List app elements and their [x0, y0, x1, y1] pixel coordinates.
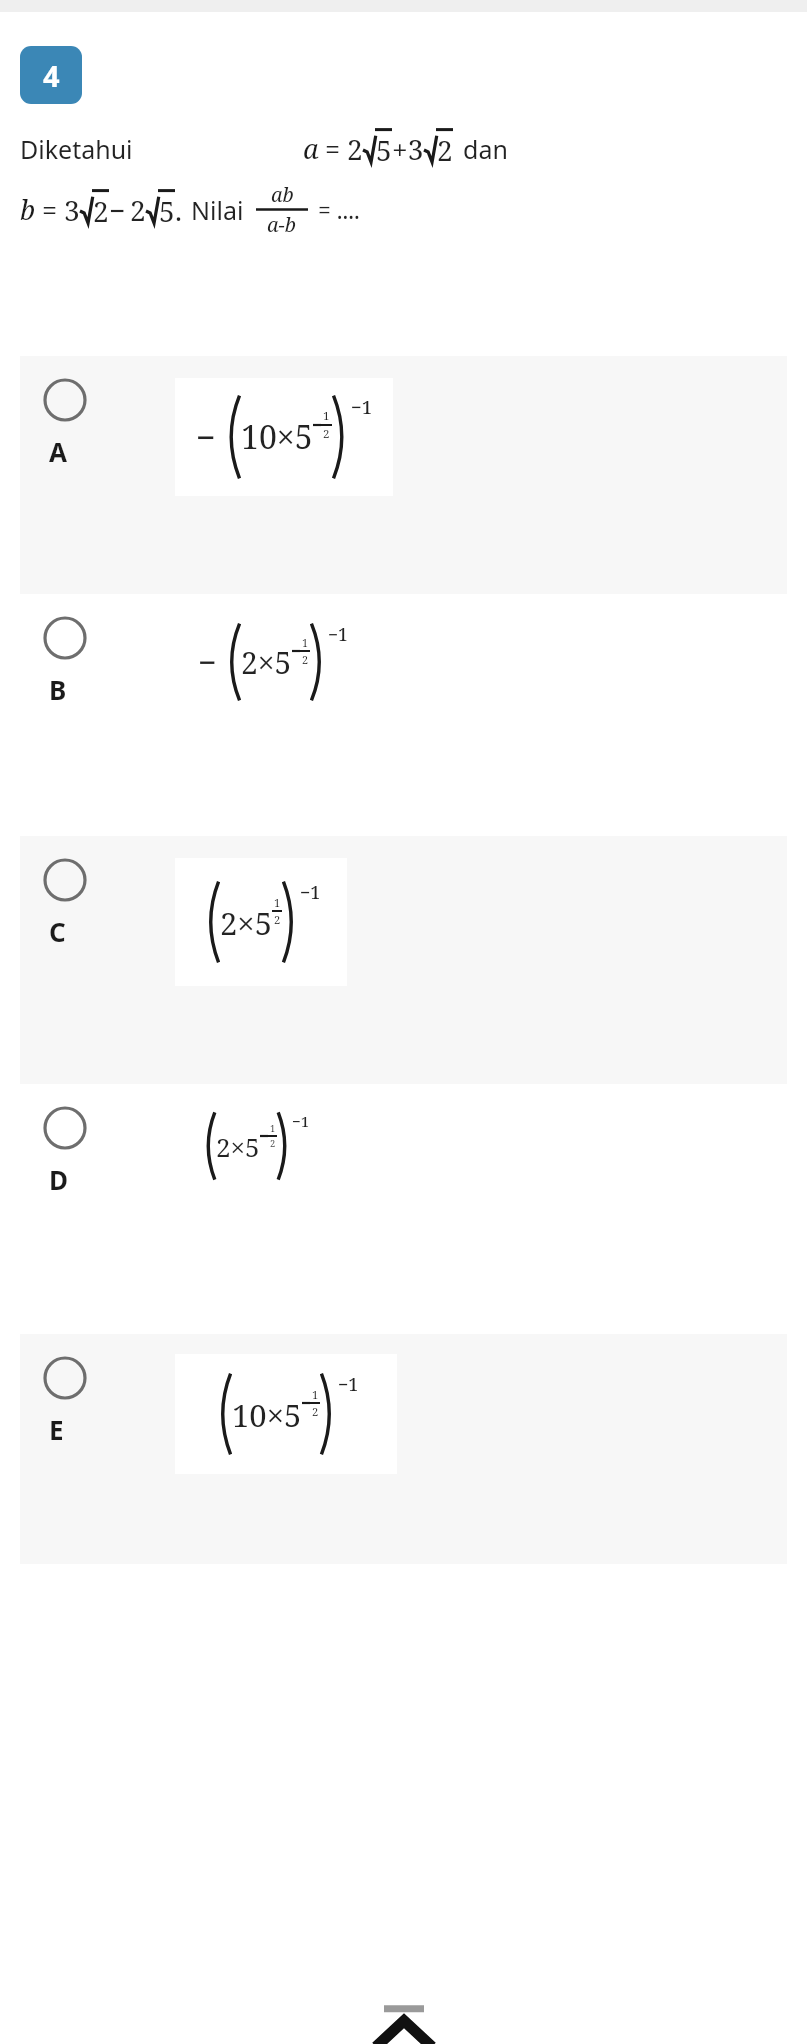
button[interactable]: D	[20, 1084, 787, 1334]
staticText: 10×5	[232, 1394, 302, 1436]
staticText: 2×5	[216, 1129, 260, 1164]
staticText: 1	[302, 635, 309, 650]
button[interactable]: E	[20, 1334, 787, 1564]
staticText: 1	[312, 1387, 319, 1402]
staticText: −	[109, 191, 126, 229]
staticText: +3	[392, 130, 424, 168]
staticText: 2	[347, 130, 363, 168]
staticText: 2	[270, 1137, 276, 1150]
staticText: 2×5	[241, 642, 292, 683]
staticText: A	[49, 434, 67, 469]
staticText: −1	[300, 880, 321, 904]
staticText: =	[325, 130, 341, 167]
staticText: −1	[292, 1111, 310, 1132]
staticText: 3	[64, 191, 80, 229]
staticText: 2	[274, 912, 281, 927]
staticText: a−b	[267, 211, 297, 238]
staticText: 1	[323, 408, 330, 424]
staticText: Diketahui	[20, 132, 133, 166]
staticText: 4	[43, 56, 60, 95]
button[interactable]: A	[20, 356, 787, 594]
staticText: b	[20, 191, 36, 228]
staticText: −1	[328, 622, 348, 646]
button[interactable]: C	[20, 836, 787, 1084]
staticText: 2	[93, 192, 109, 230]
staticText: 2	[437, 131, 453, 169]
staticText: 1	[274, 895, 281, 910]
staticText: B	[49, 672, 67, 707]
staticText: 2	[323, 426, 330, 442]
staticText: ab	[271, 181, 294, 208]
staticText: 5	[376, 131, 392, 169]
staticText: −1	[338, 1372, 359, 1396]
staticText: −1	[351, 394, 373, 419]
staticText: 2	[130, 191, 146, 229]
staticText: 1	[270, 1122, 276, 1135]
staticText: −	[198, 640, 217, 684]
staticText: 5	[159, 192, 175, 230]
staticText: a	[303, 130, 319, 167]
staticText: E	[49, 1412, 64, 1447]
button[interactable]: 4	[20, 46, 82, 104]
staticText: dan	[463, 132, 508, 166]
staticText: =	[42, 191, 58, 228]
staticText: C	[49, 914, 66, 949]
staticText: −	[196, 414, 216, 460]
staticText: Nilai	[191, 193, 244, 227]
staticText: D	[49, 1162, 69, 1197]
staticText: 2	[302, 652, 309, 667]
staticText: = ....	[318, 194, 360, 225]
staticText: 2×5	[220, 902, 272, 944]
staticText: .	[175, 191, 183, 229]
button[interactable]: Collapse	[346, 1974, 462, 2044]
staticText: 10×5	[241, 415, 313, 459]
staticText: 2	[312, 1404, 319, 1419]
button[interactable]: B	[20, 594, 787, 836]
